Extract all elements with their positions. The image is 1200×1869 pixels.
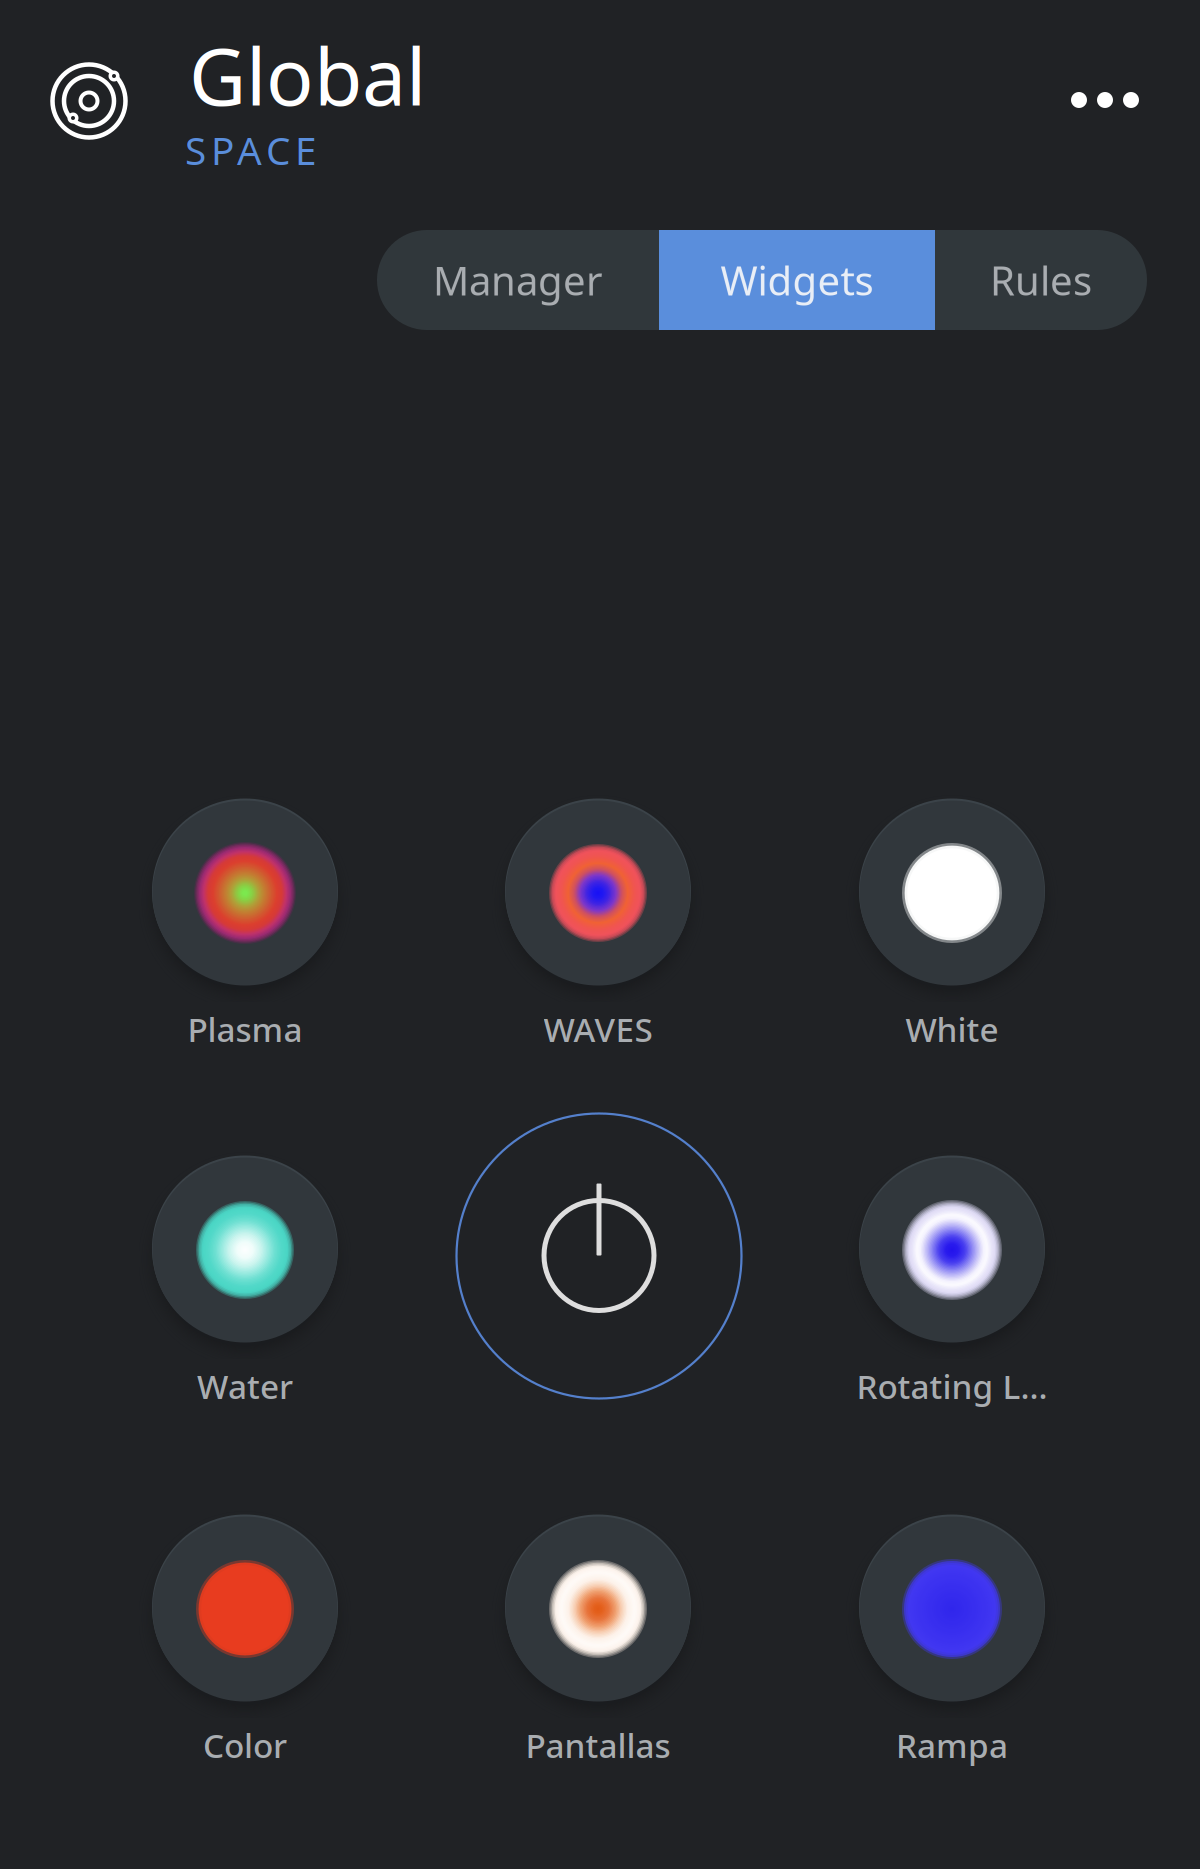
staticText: Widgets: [720, 253, 873, 306]
staticText: Rotating L...: [856, 1364, 1047, 1408]
button[interactable]: Rotating L...: [782, 1110, 1122, 1390]
button[interactable]: Rules: [935, 230, 1147, 330]
staticText: Manager: [433, 253, 603, 306]
staticText: White: [905, 1007, 998, 1051]
button[interactable]: WAVES: [428, 753, 768, 1033]
button[interactable]: Pantallas: [428, 1469, 768, 1749]
staticText: WAVES: [543, 1007, 652, 1051]
staticText: Global: [189, 23, 426, 127]
button[interactable]: White: [782, 753, 1122, 1033]
staticText: Plasma: [187, 1007, 302, 1051]
staticText: Rampa: [896, 1723, 1008, 1767]
staticText: SPACE: [185, 124, 316, 176]
button[interactable]: Manager: [377, 230, 659, 330]
staticText: Rules: [990, 253, 1092, 306]
staticText: Water: [197, 1364, 293, 1408]
button[interactable]: Widgets: [659, 230, 935, 330]
button[interactable]: Rampa: [782, 1469, 1122, 1749]
staticText: Pantallas: [525, 1723, 670, 1767]
button[interactable]: Plasma: [75, 753, 415, 1033]
button[interactable]: Color: [75, 1469, 415, 1749]
staticText: Color: [203, 1723, 287, 1767]
button[interactable]: Power: [429, 1091, 769, 1421]
button[interactable]: More options: [1030, 55, 1180, 145]
button[interactable]: Water: [75, 1110, 415, 1390]
